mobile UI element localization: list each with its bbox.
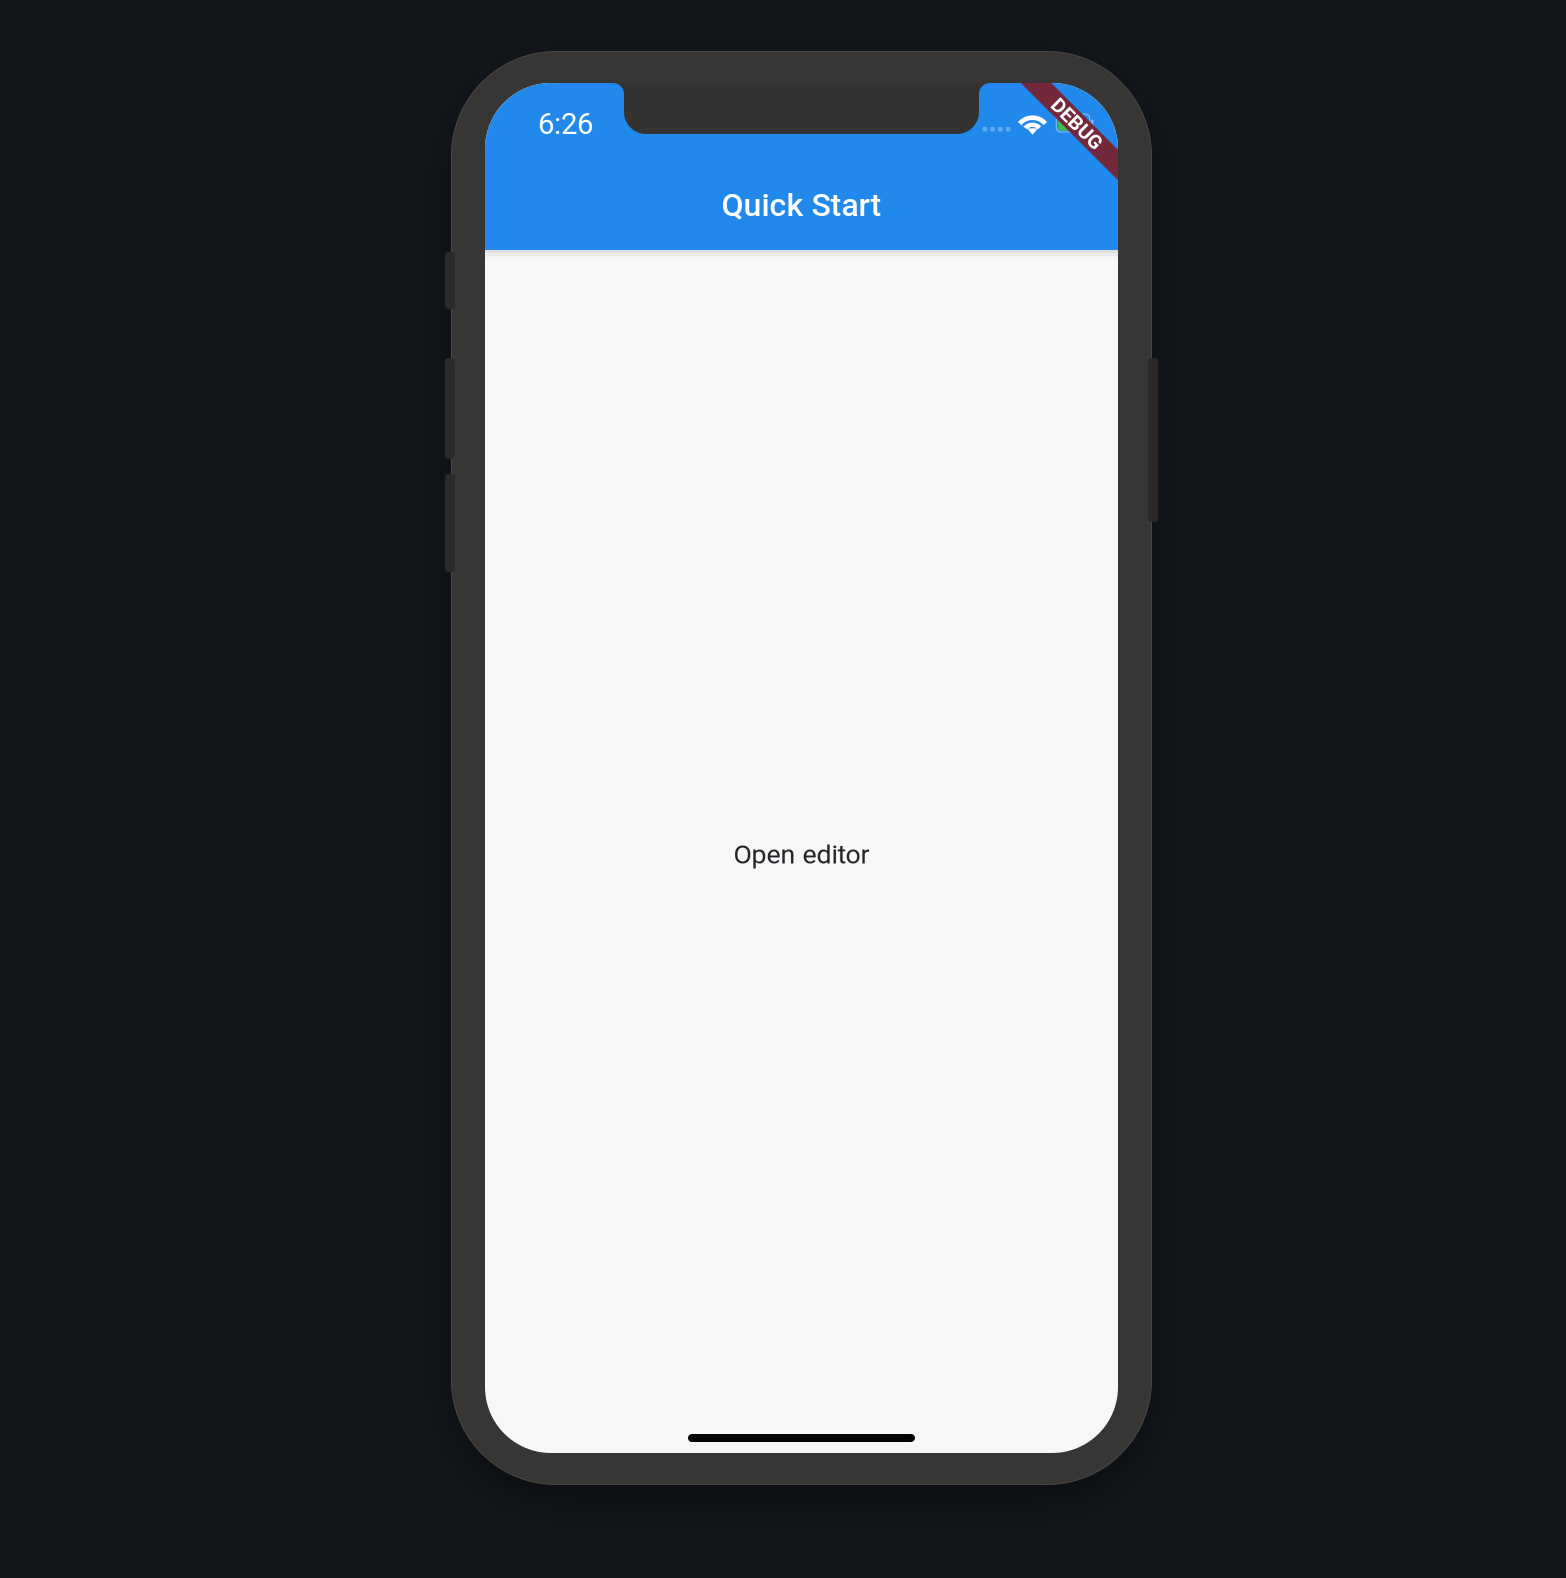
button[interactable]: Open editor: [733, 839, 869, 870]
staticText: Open editor: [733, 839, 869, 870]
staticText: 6:26: [538, 107, 593, 141]
staticText: DEBUG: [1045, 112, 1109, 136]
staticText: Quick Start: [721, 186, 881, 224]
